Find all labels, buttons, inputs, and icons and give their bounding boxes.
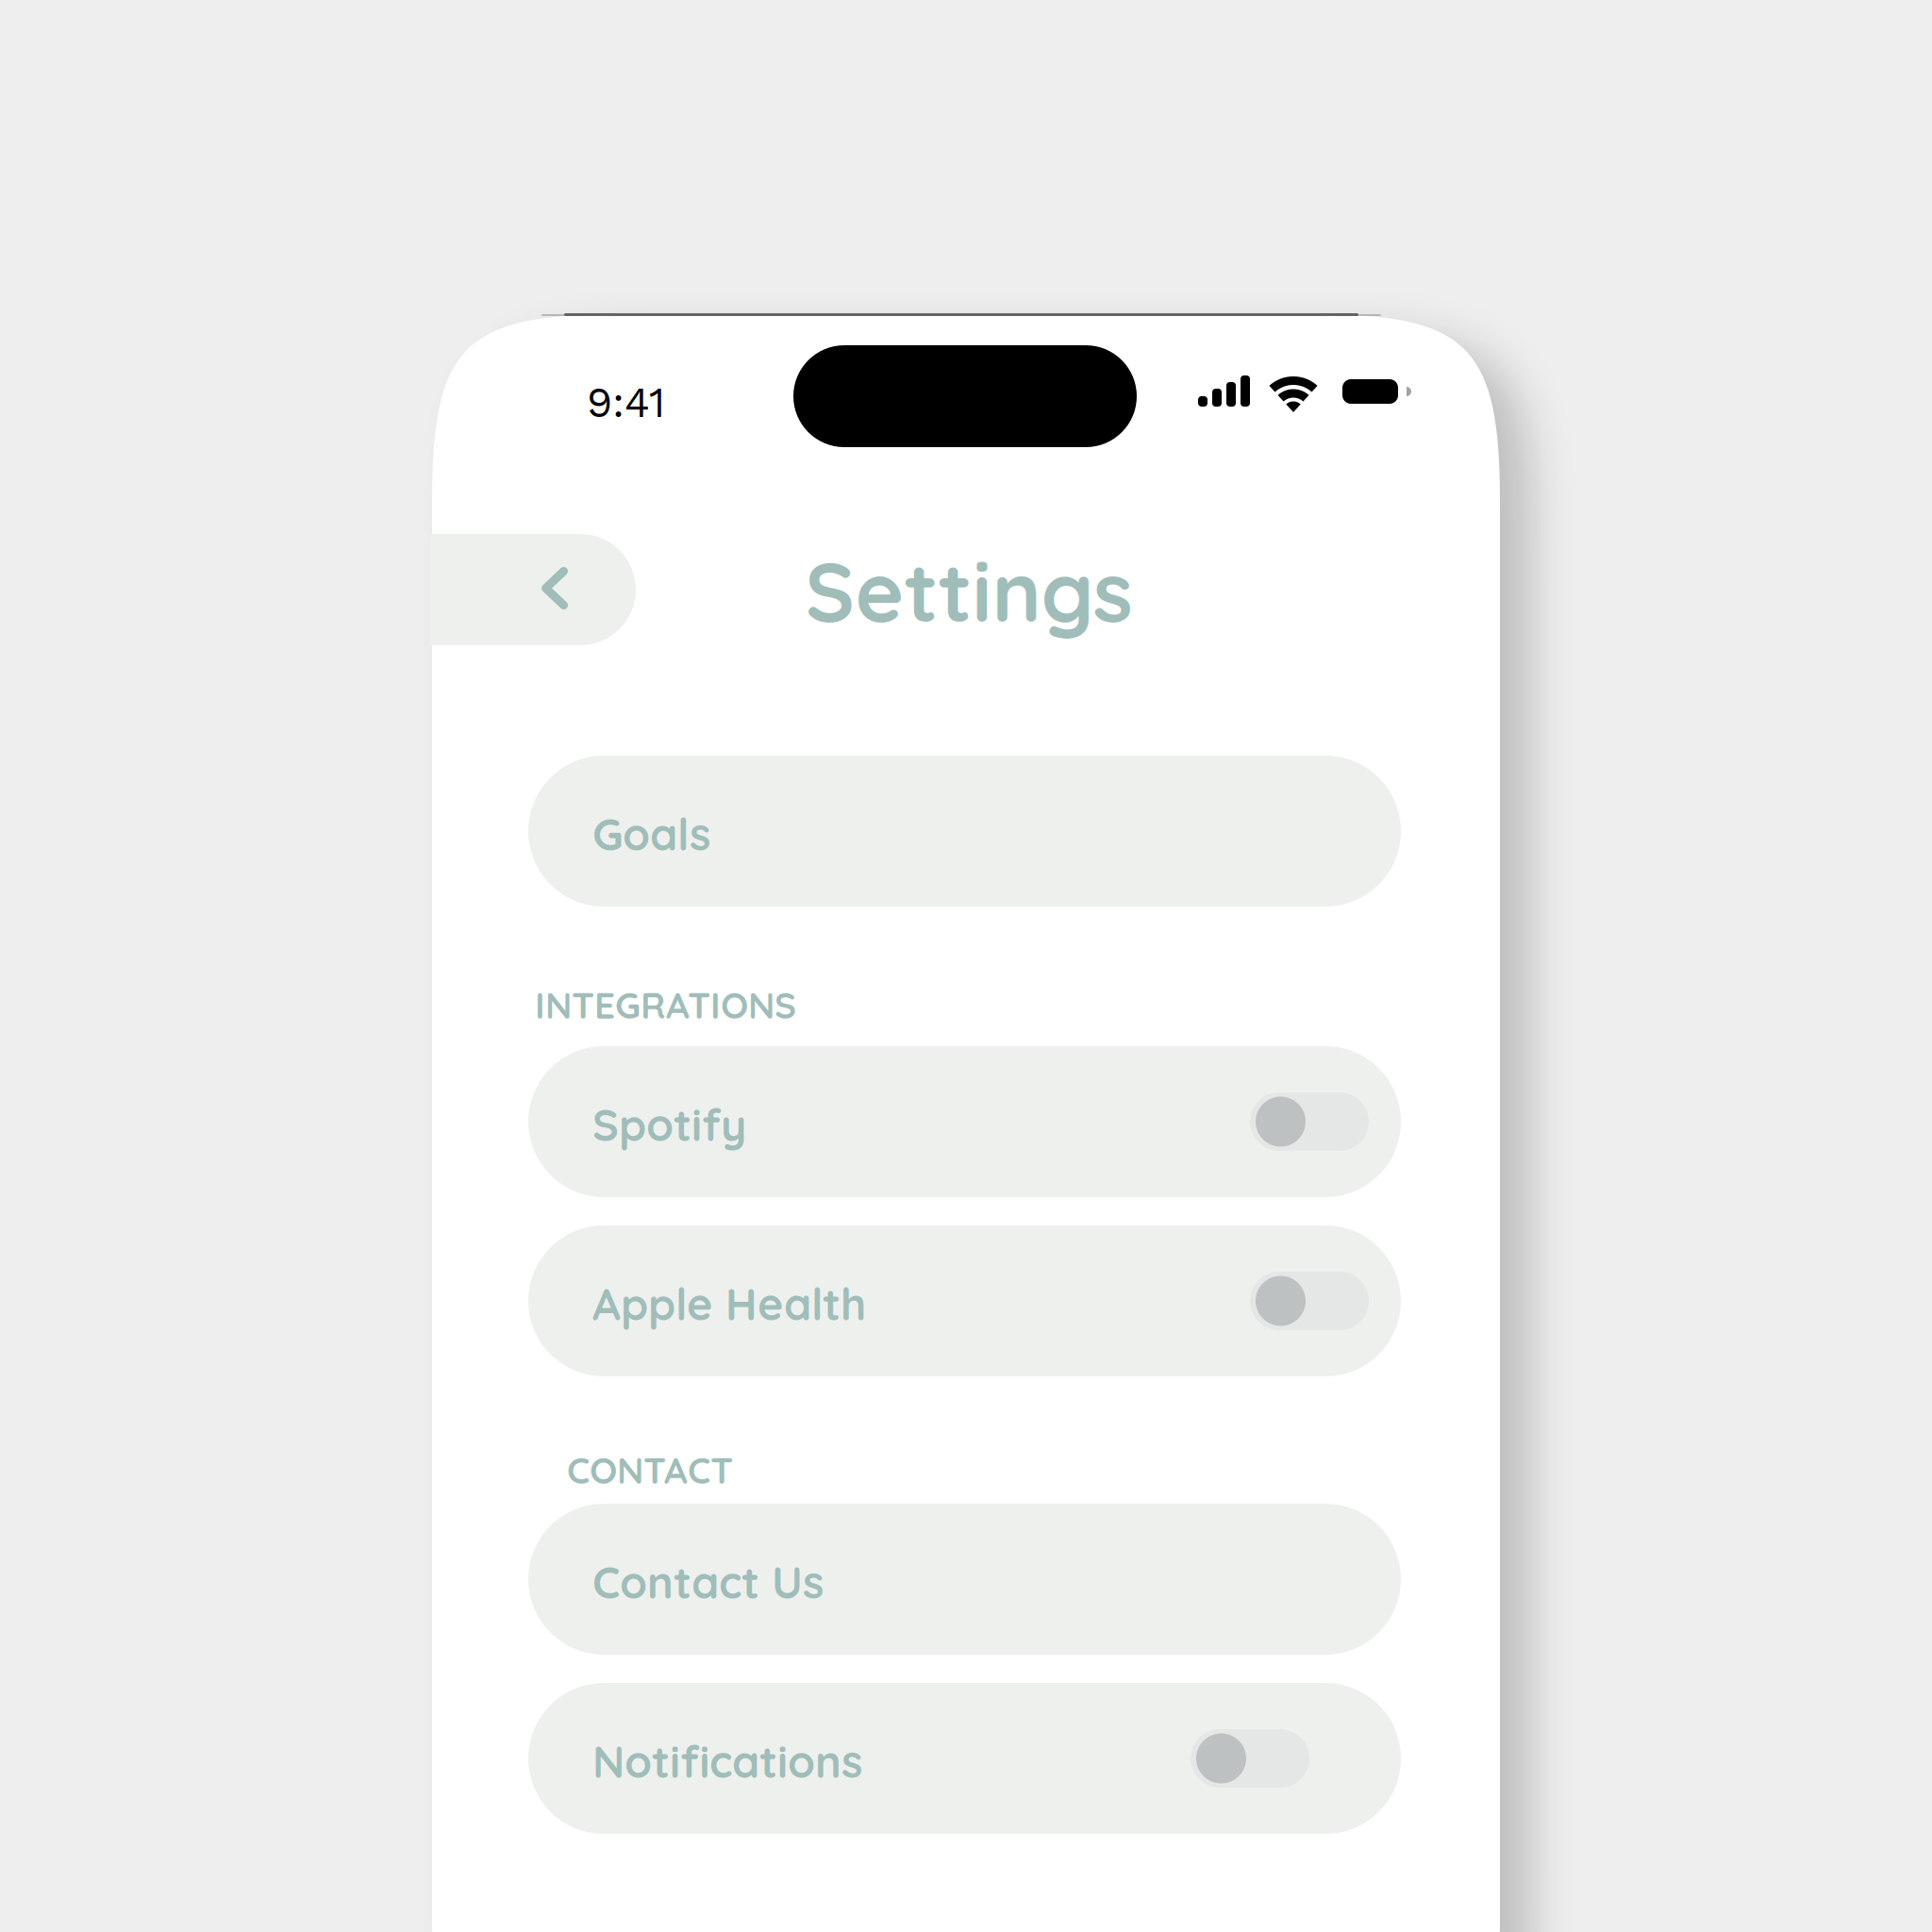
button[interactable]: Back xyxy=(430,534,636,645)
button[interactable]: Contact Us xyxy=(528,1504,1401,1655)
staticText: Notifications xyxy=(592,1734,862,1789)
staticText: Apple Health xyxy=(592,1276,866,1331)
button[interactable]: Spotify xyxy=(528,1046,1401,1197)
button[interactable]: Apple Health xyxy=(528,1225,1401,1376)
staticText: Settings xyxy=(805,539,1133,642)
button[interactable]: Goals xyxy=(528,756,1401,907)
staticText: Spotify xyxy=(592,1097,746,1152)
staticText: Contact Us xyxy=(592,1554,824,1609)
staticText: CONTACT xyxy=(567,1447,733,1493)
staticText: Goals xyxy=(592,806,710,861)
staticText: 9:41 xyxy=(587,378,665,427)
button[interactable]: Notifications xyxy=(528,1683,1401,1834)
staticText: INTEGRATIONS xyxy=(535,982,796,1028)
